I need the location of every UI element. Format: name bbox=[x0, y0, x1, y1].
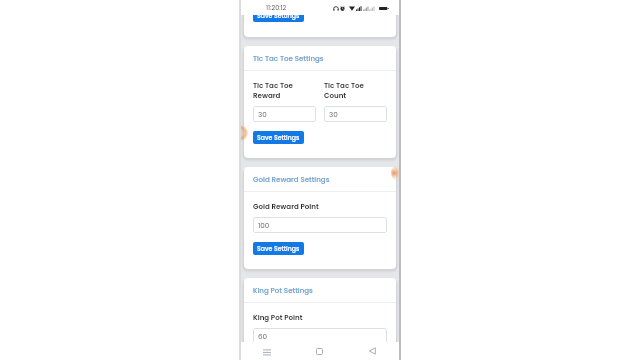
staticText: Tic Tac Toe Reward bbox=[253, 81, 316, 101]
staticText: Save Settings bbox=[257, 11, 300, 20]
staticText: Save Settings bbox=[257, 133, 300, 142]
staticText: 30 bbox=[329, 109, 338, 119]
staticText: 100 bbox=[258, 220, 270, 230]
button[interactable]: Save Settings bbox=[253, 9, 304, 22]
staticText: 60 bbox=[258, 331, 268, 341]
button[interactable]: Recent apps bbox=[241, 342, 293, 360]
staticText: Tic Tac Toe Count bbox=[324, 81, 387, 101]
button[interactable]: Save Settings bbox=[253, 242, 304, 255]
staticText: 30 bbox=[258, 109, 267, 119]
staticText: Gold Reward Settings bbox=[253, 175, 330, 185]
button[interactable]: Value 30 bbox=[253, 106, 316, 122]
staticText: Save Settings bbox=[257, 244, 300, 253]
button[interactable]: Value 30 bbox=[324, 106, 387, 122]
staticText: 11:20:12 bbox=[266, 3, 287, 12]
button[interactable]: Home bbox=[293, 342, 346, 360]
staticText: Gold Reward Point bbox=[253, 202, 319, 212]
staticText: Tic Tac Toe Settings bbox=[253, 54, 324, 64]
button[interactable]: Save Settings bbox=[253, 131, 304, 144]
button[interactable]: Back bbox=[346, 342, 399, 360]
staticText: King Pot Point bbox=[253, 313, 303, 323]
staticText: King Pot Settings bbox=[253, 286, 313, 296]
button[interactable]: Value 60 bbox=[253, 328, 387, 342]
button[interactable]: Value 100 bbox=[253, 217, 387, 233]
